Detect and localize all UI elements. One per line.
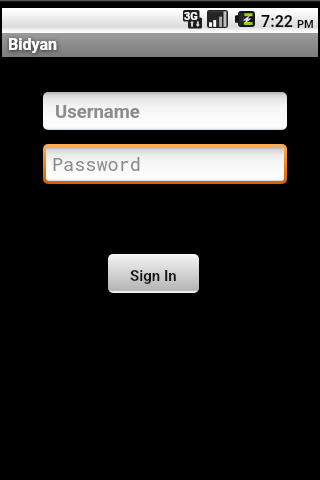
button[interactable]: Sign In: [108, 254, 199, 293]
button[interactable]: Username: [43, 92, 287, 130]
staticText: 7:22: [261, 12, 294, 31]
staticText: 3G: [184, 10, 198, 23]
button[interactable]: Password: [46, 147, 284, 181]
staticText: PM: [297, 18, 314, 31]
staticText: Bidyan: [8, 35, 57, 54]
staticText: Password: [52, 152, 141, 176]
staticText: Username: [55, 101, 140, 123]
staticText: Sign In: [130, 267, 177, 285]
